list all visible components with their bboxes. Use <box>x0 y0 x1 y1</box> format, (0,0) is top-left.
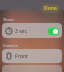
button[interactable]: Timer <box>2 23 62 38</box>
button[interactable]: Front camera <box>2 49 62 63</box>
button[interactable]: Done <box>41 4 60 13</box>
staticText: Done <box>44 5 57 12</box>
staticText: Camera <box>3 43 18 48</box>
button[interactable] <box>2 65 62 72</box>
staticText: Front <box>15 53 28 60</box>
other: Timer <box>5 27 13 35</box>
button[interactable]: Timer enabled <box>48 28 59 35</box>
staticText: 3 sec <box>15 28 27 35</box>
staticText: Timer <box>3 17 15 22</box>
other: Front camera <box>5 52 13 60</box>
